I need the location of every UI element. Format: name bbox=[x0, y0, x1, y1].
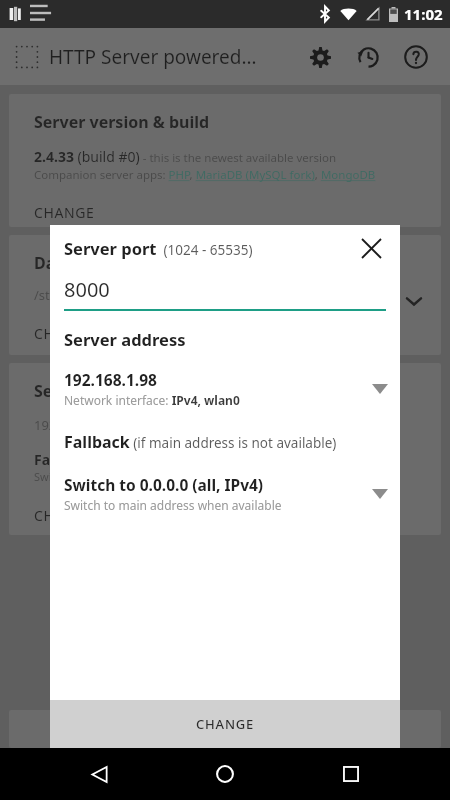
staticText: Companion server apps: PHP, MariaDB (MyS… bbox=[34, 167, 376, 183]
staticText: 192.168.1.98 bbox=[64, 369, 157, 390]
staticText: Data folder bbox=[34, 252, 124, 274]
staticText: Fallback bbox=[34, 450, 92, 469]
staticText: Switch to main address when available bbox=[64, 497, 282, 513]
button[interactable]: 192.168.1.98 bbox=[64, 369, 388, 408]
button[interactable]: Help bbox=[396, 37, 436, 77]
button[interactable]: Switch to 0.0.0.0 (all, IPv4) bbox=[64, 474, 388, 513]
button[interactable]: Close bbox=[354, 231, 388, 265]
button[interactable]: Back bbox=[72, 748, 126, 800]
button[interactable]: CHANGE bbox=[50, 700, 400, 748]
button[interactable]: Data folder bbox=[9, 235, 441, 355]
staticText: 11:02 bbox=[404, 4, 443, 24]
staticText: 8000 bbox=[64, 276, 110, 303]
button[interactable]: History bbox=[348, 37, 388, 77]
staticText: Switch to 0.0.0.0 (all, IPv4) bbox=[64, 474, 264, 495]
staticText: 2.4.33 (build #0) - this is the newest a… bbox=[34, 147, 337, 166]
staticText: 192.168.1.98 bbox=[34, 416, 112, 434]
button[interactable]: 8000 bbox=[64, 270, 386, 311]
staticText: /storage/emulated/0 bbox=[34, 286, 161, 304]
staticText: Fallback (if main address is not availab… bbox=[64, 431, 337, 453]
staticText: Server address bbox=[34, 380, 152, 402]
staticText: Server address bbox=[64, 328, 186, 350]
button[interactable]: Recent apps bbox=[324, 748, 378, 800]
button[interactable]: Home bbox=[198, 748, 252, 800]
staticText: Server port (1024 - 65535) bbox=[64, 237, 253, 259]
staticText: Network interface: IPv4, wlan0 bbox=[64, 392, 240, 408]
button[interactable]: Server version & build bbox=[9, 94, 441, 227]
staticText: Server version & build bbox=[34, 111, 210, 133]
staticText: CHANGE bbox=[34, 506, 95, 525]
button[interactable]: Settings bbox=[300, 37, 340, 77]
staticText: HTTP Server powered… bbox=[49, 44, 257, 70]
staticText: CHANGE bbox=[34, 203, 95, 222]
staticText: Switch to 0.0.0.0 bbox=[34, 469, 118, 484]
button[interactable]: Server address bbox=[9, 363, 441, 535]
staticText: CHANGE bbox=[196, 715, 255, 733]
staticText: CHANGE bbox=[34, 324, 95, 343]
